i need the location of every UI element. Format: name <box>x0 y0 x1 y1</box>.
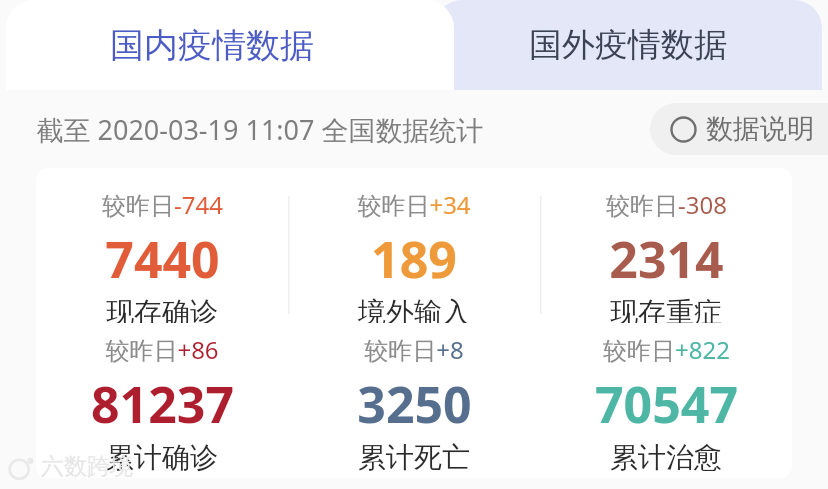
staticText: 189 <box>371 225 457 293</box>
staticText: 累计治愈 <box>610 440 722 475</box>
staticText: 数据说明 <box>706 112 814 146</box>
staticText: 较昨日+8 <box>364 333 464 366</box>
staticText: 境外输入 <box>358 295 470 323</box>
other: Help <box>670 116 697 143</box>
button[interactable]: 较昨日-308 <box>540 188 792 323</box>
button[interactable]: 较昨日+86 <box>36 333 288 478</box>
staticText: 81237 <box>91 370 234 438</box>
button[interactable]: 较昨日-744 <box>36 188 288 323</box>
staticText: 70547 <box>595 370 738 438</box>
staticText: 较昨日+34 <box>357 188 471 221</box>
button[interactable]: 较昨日+8 <box>288 333 540 478</box>
button[interactable]: Help <box>650 103 828 155</box>
staticText: 国外疫情数据 <box>529 24 727 66</box>
staticText: 7440 <box>105 225 220 293</box>
button[interactable]: 较昨日+34 <box>288 188 540 323</box>
staticText: 3250 <box>357 370 472 438</box>
staticText: 较昨日-744 <box>102 188 223 221</box>
staticText: 国内疫情数据 <box>110 24 314 67</box>
staticText: 较昨日-308 <box>606 188 727 221</box>
staticText: 六数跨境 <box>41 452 133 481</box>
staticText: 累计确诊 <box>106 440 218 475</box>
staticText: 现存确诊 <box>106 295 218 323</box>
button[interactable]: 国内疫情数据 <box>6 0 454 90</box>
staticText: 2314 <box>609 225 724 293</box>
staticText: 现存重症 <box>610 295 722 323</box>
staticText: 较昨日+86 <box>105 333 219 366</box>
staticText: 截至 2020-03-19 11:07 全国数据统计 <box>36 111 484 148</box>
staticText: 较昨日+822 <box>603 333 730 366</box>
staticText: 累计死亡 <box>358 440 470 475</box>
button[interactable]: 国外疫情数据 <box>434 0 822 90</box>
button[interactable]: 较昨日+822 <box>540 333 792 478</box>
